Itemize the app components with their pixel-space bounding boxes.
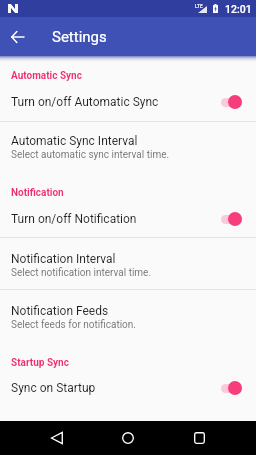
button[interactable]: Navigate up (0, 20, 34, 54)
staticText: Notification Feeds (11, 304, 109, 318)
staticText: 12:01 (225, 3, 252, 15)
button[interactable]: Turn on/off Automatic Sync (0, 84, 256, 119)
button[interactable]: Notification Interval (0, 252, 256, 294)
staticText: Settings (52, 28, 107, 46)
button[interactable]: Sync on Startup (0, 370, 256, 405)
staticText: Automatic Sync Interval (11, 134, 138, 148)
staticText: Select automatic sync interval time. (11, 149, 170, 161)
button[interactable]: Recent apps (178, 421, 220, 455)
button[interactable]: Automatic Sync Interval (0, 134, 256, 176)
button[interactable]: Notification Feeds (0, 304, 256, 346)
staticText: Notification (11, 187, 64, 199)
staticText: Turn on/off Automatic Sync (11, 95, 221, 109)
staticText: Automatic Sync (11, 70, 82, 82)
button[interactable]: Home (107, 421, 149, 455)
button[interactable]: Back (36, 421, 78, 455)
staticText: Turn on/off Notification (11, 212, 221, 226)
button[interactable]: Turn on/off Notification (0, 201, 256, 236)
staticText: Startup Sync (11, 357, 69, 369)
staticText: Notification Interval (11, 252, 116, 266)
staticText: Sync on Startup (11, 381, 221, 395)
staticText: Select notification interval time. (11, 267, 152, 279)
staticText: LTE (195, 3, 203, 9)
staticText: Select feeds for notification. (11, 319, 136, 331)
